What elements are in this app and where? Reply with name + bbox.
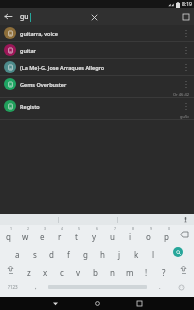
staticText: n [110,267,115,278]
staticText: j [118,249,121,260]
button[interactable]: Toggle view [177,8,194,25]
button[interactable]: 6 [85,225,103,243]
button[interactable]: Registo [0,98,194,114]
button[interactable]: x [37,261,53,279]
button[interactable]: Backspace [175,225,194,243]
staticText: 5 [78,226,81,231]
button[interactable]: f [60,243,77,261]
button[interactable]: Back [41,297,69,310]
button[interactable]: 3 [34,225,51,243]
staticText: z [27,267,31,278]
button[interactable]: 4 [51,225,68,243]
button[interactable]: ? [155,261,172,279]
button[interactable]: Back [0,8,17,25]
button[interactable]: guitar [0,42,194,58]
button[interactable]: 0 [157,225,175,243]
staticText: Registo [20,103,40,110]
button[interactable]: 2 [17,225,34,243]
staticText: a [15,249,20,260]
button[interactable]: j [111,243,128,261]
staticText: t [75,231,78,242]
staticText: (La Me)-G. Jose Arraques Allegro [20,64,105,71]
staticText: 6 [96,226,99,231]
button[interactable]: Comma [26,279,45,295]
button[interactable]: Voice input [176,214,194,225]
staticText: y [92,231,97,242]
staticText: guitar [20,47,36,54]
staticText: i [129,231,132,242]
staticText: f [67,249,70,260]
staticText: u [110,231,115,242]
button[interactable]: 9 [139,225,157,243]
staticText: m [126,267,134,278]
button[interactable]: ?123 [0,279,26,295]
button[interactable]: h [94,243,111,261]
staticText: 4 [61,226,64,231]
button[interactable]: k [128,243,145,261]
staticText: k [134,249,139,260]
button[interactable]: guitarra, voice [0,25,194,41]
button[interactable]: Search [162,243,194,261]
button[interactable]: c [53,261,70,279]
button[interactable]: Recent apps [125,297,153,310]
button[interactable]: Gems Overbuster [0,76,194,92]
button[interactable]: More options [182,60,190,74]
staticText: h [100,249,105,260]
button[interactable]: ! [138,261,155,279]
staticText: c [60,267,64,278]
button[interactable]: b [87,261,104,279]
staticText: Or 46:42 [173,92,190,97]
button[interactable]: More options [182,43,190,57]
staticText: p [164,231,169,242]
staticText: x [43,267,48,278]
button[interactable]: Home [83,297,111,310]
button[interactable]: 1 [0,225,17,243]
button[interactable]: 5 [68,225,85,243]
button[interactable]: Space [45,279,150,295]
button[interactable]: v [70,261,87,279]
staticText: b [93,267,98,278]
button[interactable]: m [121,261,138,279]
staticText: q [6,231,11,242]
button[interactable]: n [104,261,121,279]
button[interactable]: l [145,243,162,261]
staticText: 7 [114,226,117,231]
staticText: l [152,249,155,260]
staticText: r [58,231,62,242]
staticText: 3 [44,226,47,231]
staticText: e [40,231,45,242]
button[interactable]: g [77,243,94,261]
button[interactable]: Shift [0,261,21,279]
staticText: ! [145,267,148,278]
staticText: guitarra, voice [20,30,58,37]
button[interactable]: 7 [103,225,121,243]
staticText: 2 [27,226,30,231]
button[interactable]: Emoji [169,279,194,295]
staticText: v [76,267,81,278]
button[interactable]: More options [182,99,190,113]
button[interactable]: d [43,243,60,261]
button[interactable]: z [21,261,37,279]
button[interactable]: More options [182,77,190,91]
button[interactable]: a [9,243,26,261]
button[interactable]: s [26,243,43,261]
button[interactable]: More options [182,26,190,40]
button[interactable]: (La Me)-G. Jose Arraques Allegro [0,59,194,75]
staticText: w [22,231,29,242]
staticText: d [49,249,54,260]
staticText: 8 [132,226,135,231]
staticText: gu5c [180,114,190,119]
staticText: 1 [10,226,13,231]
staticText: ? [162,267,166,278]
staticText: 0 [168,226,171,231]
staticText: s [33,249,37,260]
staticText: g [83,249,88,260]
staticText: Gems Overbuster [20,81,67,88]
button[interactable]: Clear query [87,10,101,24]
button[interactable]: 8 [121,225,139,243]
button[interactable]: Shift [172,261,194,279]
